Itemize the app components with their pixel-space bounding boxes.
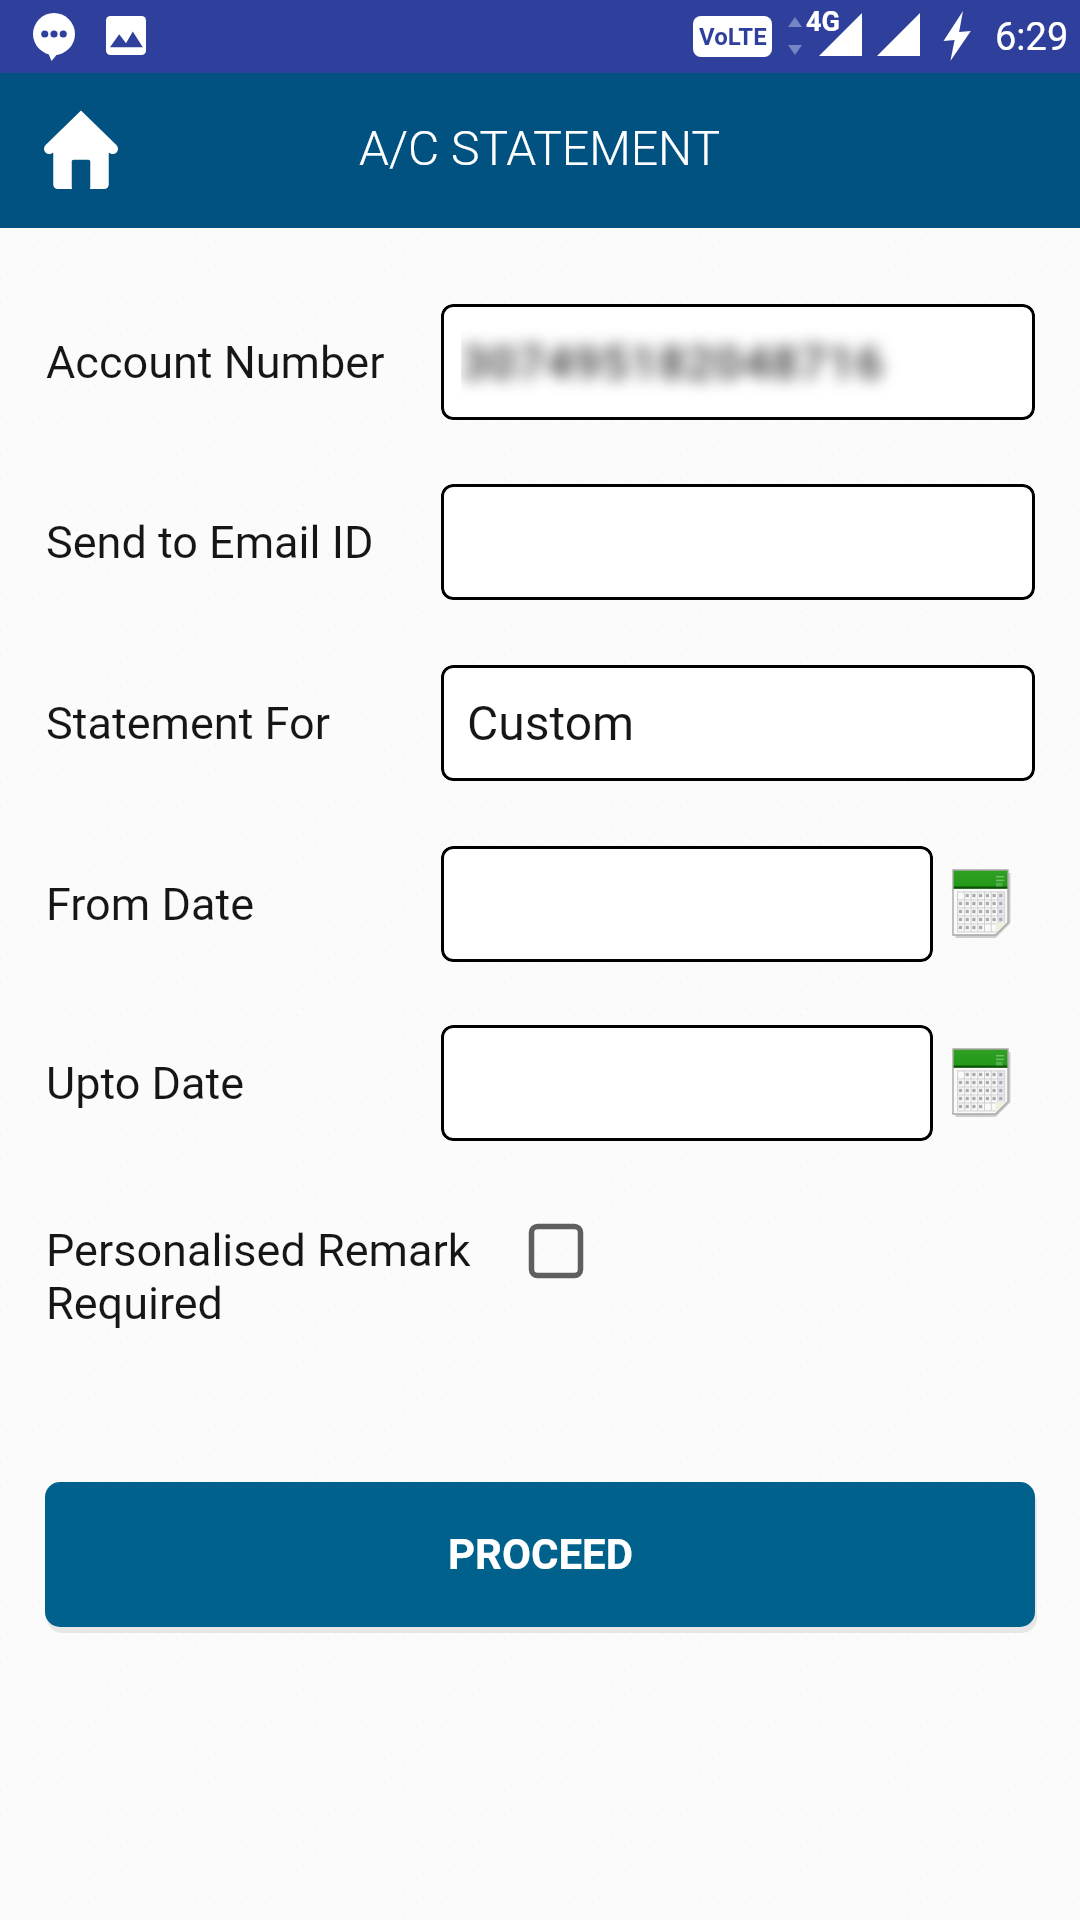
staticText: 4G <box>806 6 840 38</box>
button[interactable]: PROCEED <box>45 1482 1035 1627</box>
button[interactable]: From Date <box>441 846 933 962</box>
staticText: A/C STATEMENT <box>359 120 721 176</box>
staticText: 6:29 <box>995 15 1069 60</box>
staticText: 307495182048716 <box>461 335 885 390</box>
button[interactable]: Send to Email ID <box>441 484 1035 600</box>
staticText: Upto Date <box>46 1057 441 1110</box>
button[interactable]: Personalised Remark <box>0 1224 1080 1330</box>
button[interactable]: Account Number <box>441 304 1035 420</box>
staticText: PROCEED <box>448 1530 633 1579</box>
staticText: Account Number <box>46 336 441 389</box>
staticText: VoLTE <box>699 23 767 51</box>
staticText: Personalised Remark <box>46 1224 471 1277</box>
staticText: Required <box>46 1277 223 1330</box>
staticText: Statement For <box>46 697 441 750</box>
button[interactable]: Open calendar to pick Upto Date <box>951 1046 1013 1120</box>
other: Personalised Remark Required, unchecked <box>529 1224 583 1278</box>
button[interactable]: Open calendar to pick From Date <box>951 867 1013 941</box>
button[interactable]: Statement For <box>441 665 1035 781</box>
button[interactable]: Home <box>22 92 140 210</box>
staticText: Custom <box>467 695 635 751</box>
staticText: Send to Email ID <box>46 516 441 569</box>
button[interactable]: Upto Date <box>441 1025 933 1141</box>
staticText: From Date <box>46 878 441 931</box>
